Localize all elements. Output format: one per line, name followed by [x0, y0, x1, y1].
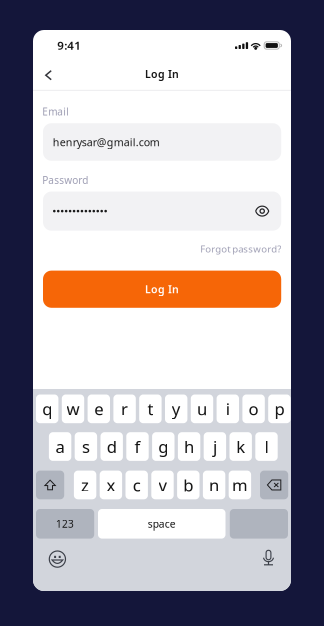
- staticText: Password: [42, 173, 88, 187]
- button[interactable]: z: [74, 471, 96, 499]
- button[interactable]: u: [191, 394, 213, 423]
- staticText: l: [264, 435, 268, 458]
- staticText: j: [213, 435, 217, 458]
- button[interactable]: o: [242, 394, 265, 423]
- button[interactable]: c: [125, 471, 148, 499]
- button[interactable]: h: [178, 432, 200, 461]
- button[interactable]: y: [165, 394, 187, 423]
- button[interactable]: p: [268, 394, 291, 423]
- button[interactable]: q: [36, 394, 58, 423]
- button[interactable]: Show password: [255, 205, 269, 217]
- button[interactable]: Dictation: [263, 549, 274, 566]
- button[interactable]: k: [229, 432, 252, 461]
- staticText: q: [42, 397, 52, 420]
- button[interactable]: r: [113, 394, 136, 423]
- staticText: y: [172, 397, 181, 420]
- staticText: henrysar@gmail.com: [53, 135, 160, 149]
- staticText: Email: [42, 105, 69, 118]
- button[interactable]: l: [255, 432, 278, 461]
- staticText: t: [147, 397, 153, 420]
- button[interactable]: Emoji: [49, 550, 66, 568]
- staticText: u: [197, 397, 207, 420]
- staticText: g: [158, 435, 168, 458]
- button[interactable]: a: [49, 432, 71, 461]
- staticText: h: [184, 435, 194, 458]
- staticText: o: [249, 397, 259, 420]
- staticText: i: [226, 397, 230, 420]
- staticText: x: [106, 474, 115, 496]
- button[interactable]: m: [229, 471, 251, 499]
- staticText: a: [56, 435, 65, 458]
- staticText: d: [107, 435, 117, 458]
- staticText: Log In: [145, 282, 179, 296]
- staticText: 9:41: [57, 38, 81, 53]
- staticText: w: [66, 397, 79, 420]
- staticText: r: [121, 397, 128, 420]
- button[interactable]: x: [100, 471, 122, 499]
- button[interactable]: Forgot password?: [43, 242, 281, 255]
- button[interactable]: n: [203, 471, 225, 499]
- staticText: Log In: [145, 67, 179, 81]
- staticText: 123: [56, 517, 74, 531]
- button[interactable]: e: [88, 394, 110, 423]
- button[interactable]: j: [204, 432, 226, 461]
- button[interactable]: s: [75, 432, 97, 461]
- button[interactable]: f: [126, 432, 149, 461]
- staticText: n: [209, 474, 219, 496]
- staticText: p: [274, 397, 284, 420]
- button[interactable]: Delete: [260, 471, 288, 499]
- staticText: e: [94, 397, 103, 420]
- button[interactable]: Numbers: [36, 509, 94, 539]
- button[interactable]: t: [139, 394, 162, 423]
- button[interactable]: Log In: [43, 271, 281, 308]
- staticText: s: [82, 435, 90, 458]
- button[interactable]: d: [100, 432, 123, 461]
- button[interactable]: return: [230, 509, 288, 539]
- staticText: c: [133, 474, 141, 496]
- staticText: k: [236, 435, 245, 458]
- staticText: m: [232, 474, 248, 496]
- button[interactable]: w: [62, 394, 84, 423]
- button[interactable]: Shift: [36, 471, 64, 499]
- button[interactable]: g: [152, 432, 174, 461]
- staticText: f: [134, 435, 140, 458]
- staticText: z: [81, 474, 89, 496]
- staticText: v: [158, 474, 166, 496]
- button[interactable]: i: [217, 394, 239, 423]
- button[interactable]: b: [177, 471, 199, 499]
- button[interactable]: Back: [36, 63, 60, 87]
- staticText: Forgot password?: [200, 242, 281, 255]
- staticText: space: [148, 517, 176, 531]
- button[interactable]: space: [98, 509, 225, 539]
- staticText: b: [183, 474, 193, 496]
- button[interactable]: v: [151, 471, 174, 499]
